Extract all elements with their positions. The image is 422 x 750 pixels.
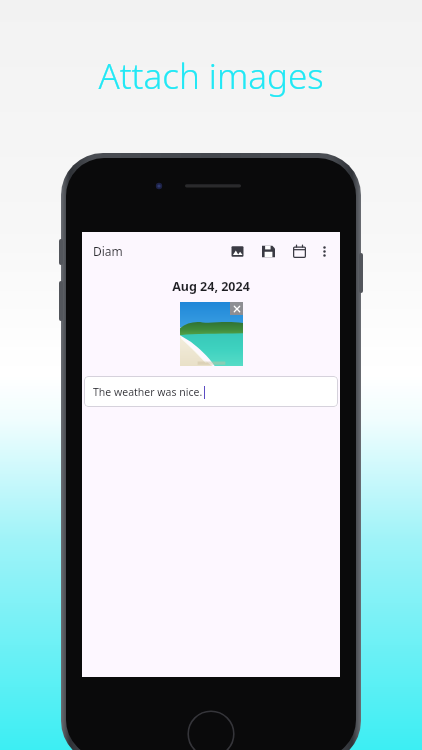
staticText: Aug 24, 2024 bbox=[172, 278, 250, 295]
button[interactable]: Remove image bbox=[230, 302, 243, 315]
button[interactable]: More options bbox=[314, 241, 334, 261]
button[interactable]: The weather was nice. bbox=[84, 376, 338, 407]
staticText: Diam bbox=[93, 243, 123, 259]
staticText: The weather was nice. bbox=[93, 385, 203, 399]
button[interactable]: Save bbox=[255, 238, 281, 264]
button[interactable]: Remove image bbox=[180, 302, 243, 366]
button[interactable]: Attach image bbox=[224, 238, 250, 264]
button[interactable]: Calendar bbox=[286, 238, 312, 264]
staticText: Attach images bbox=[98, 52, 324, 100]
